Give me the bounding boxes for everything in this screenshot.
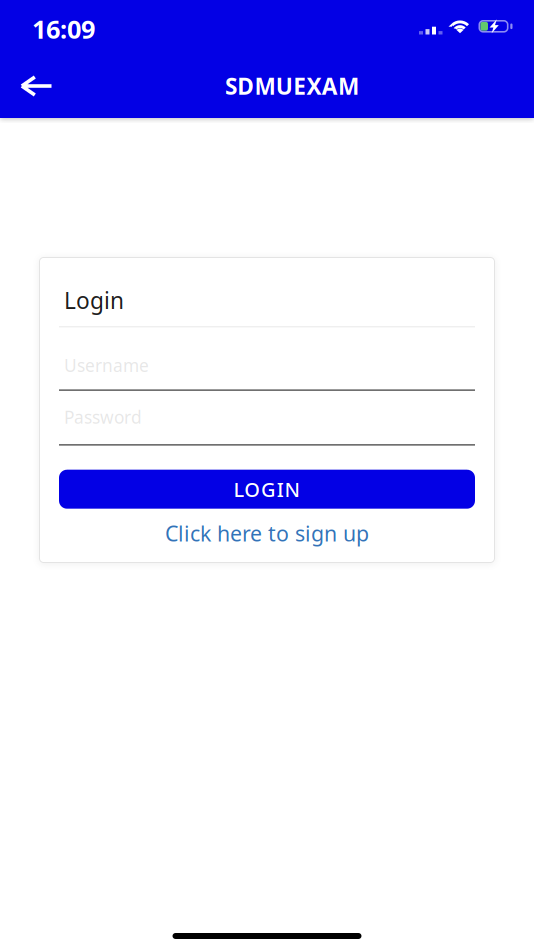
staticText: 16:09 [32,12,95,46]
button[interactable]: Username [59,353,475,391]
button[interactable]: Password [59,405,475,446]
staticText: LOGIN [233,476,301,502]
staticText: Password [64,405,142,428]
button[interactable]: Click here to sign up [59,522,475,545]
staticText: Click here to sign up [165,519,369,547]
button[interactable]: LOGIN [59,470,475,509]
staticText: SDMUEXAM [225,71,359,101]
staticText: Login [64,285,124,315]
staticText: Username [64,354,149,377]
button[interactable]: Back [0,65,53,107]
